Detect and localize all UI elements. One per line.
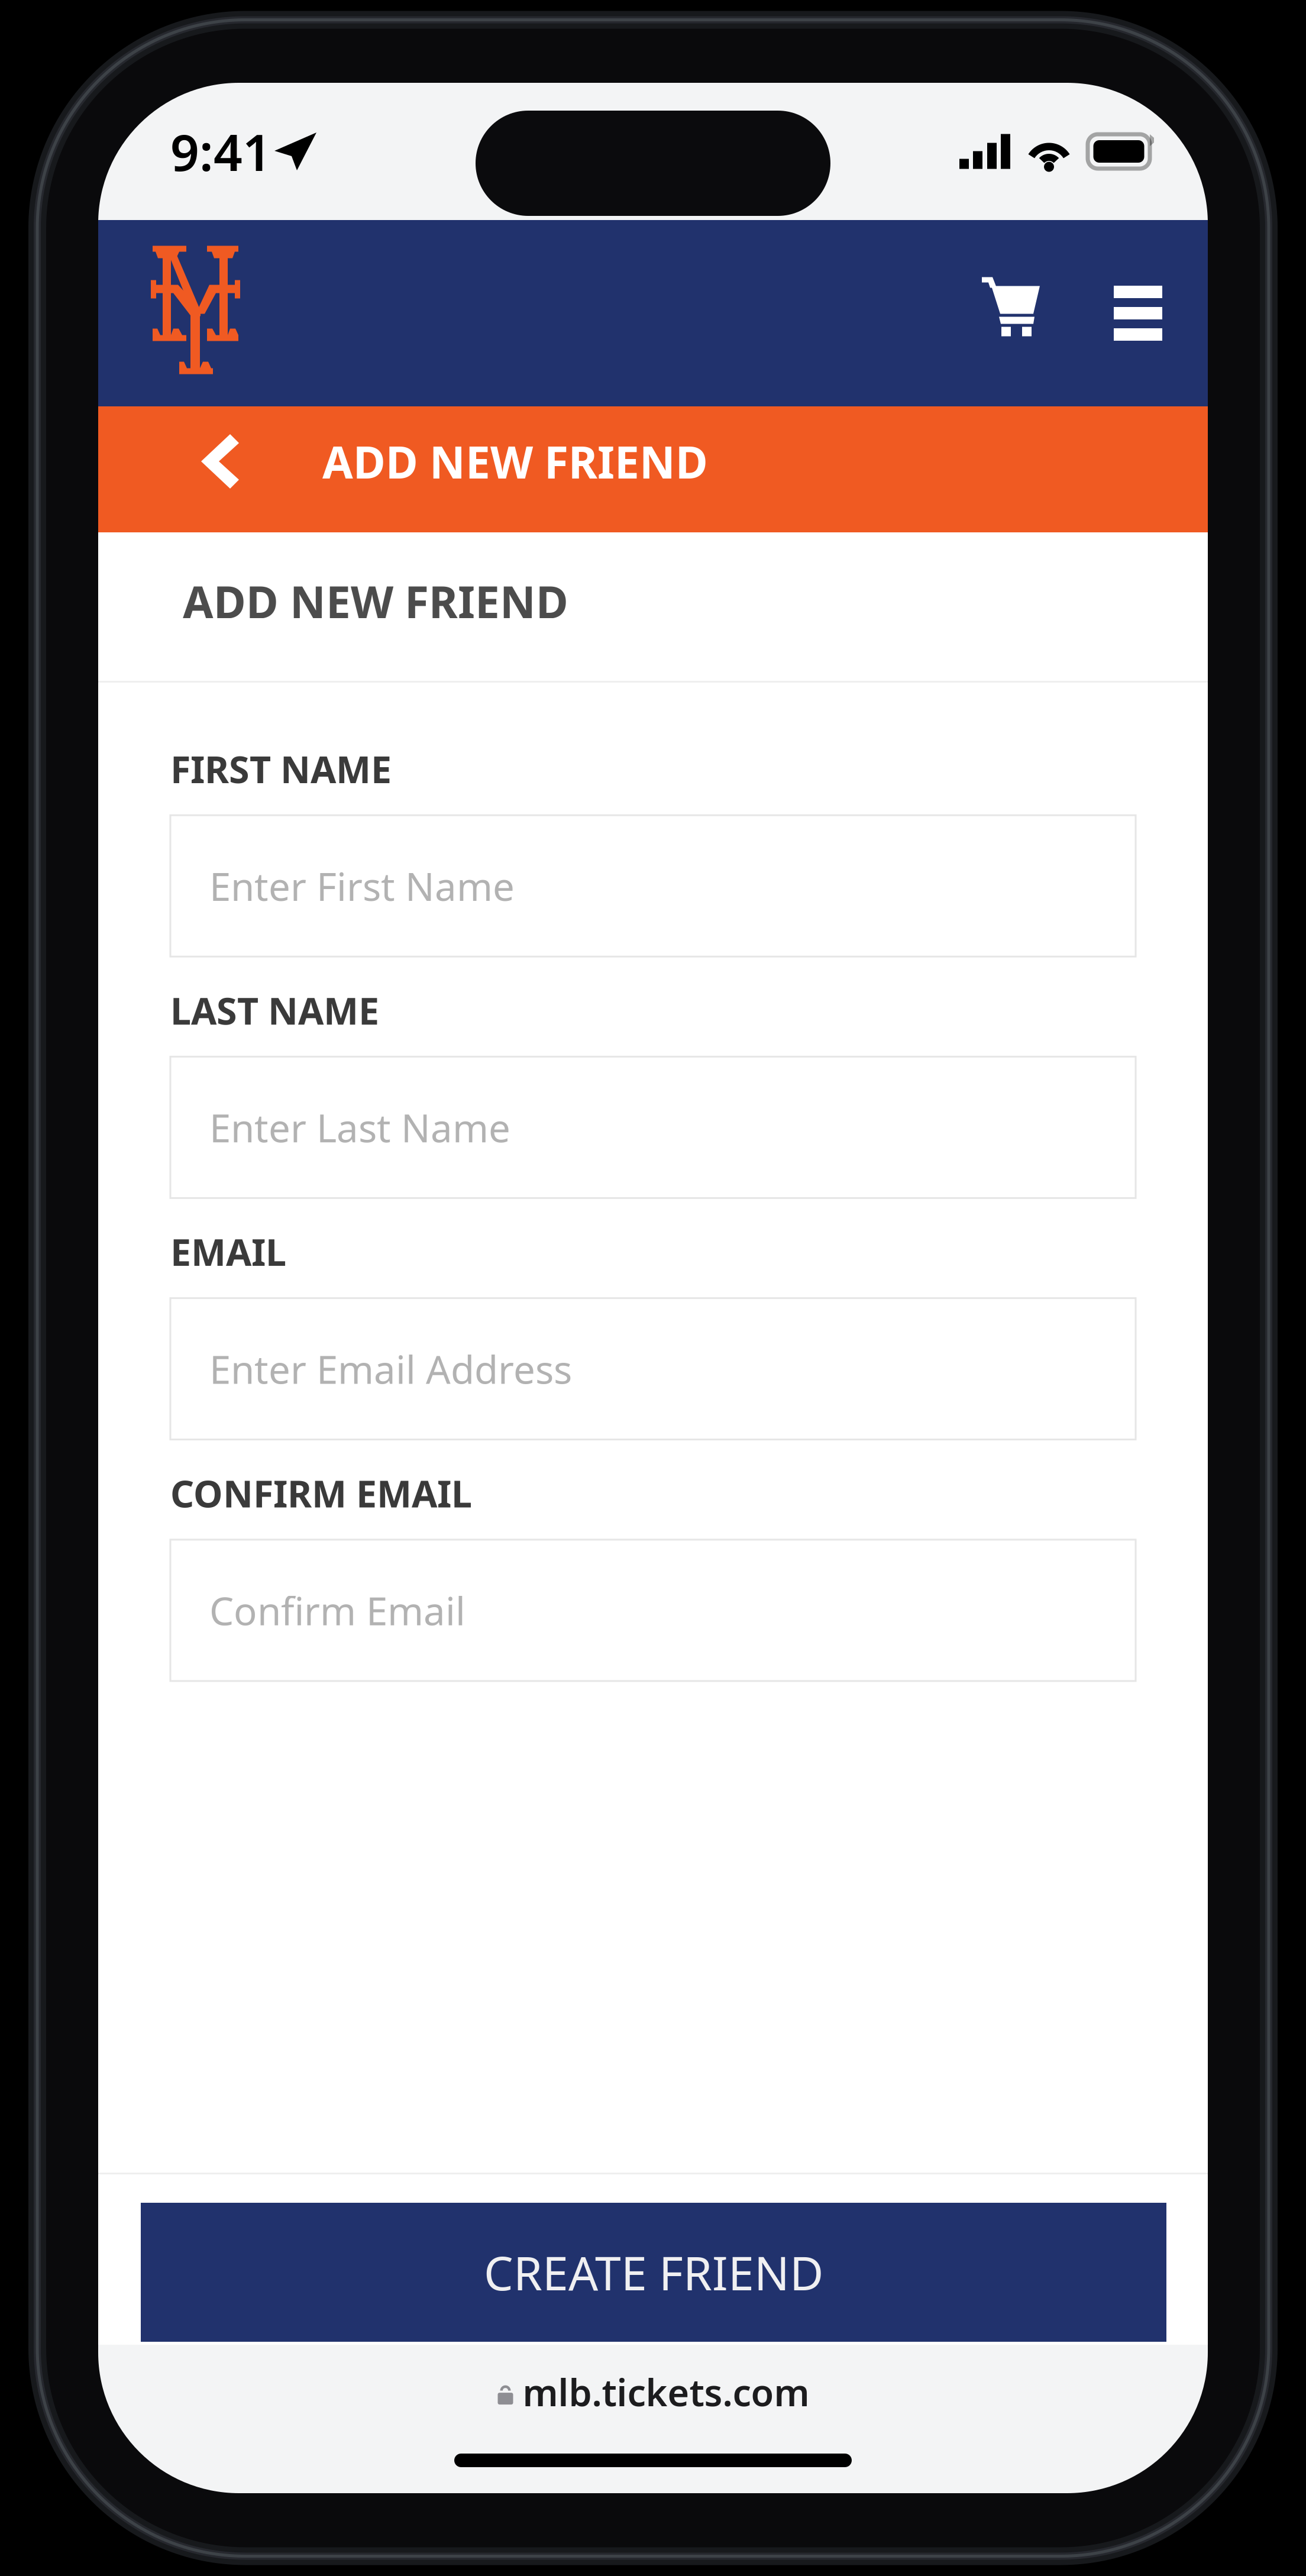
button[interactable]: Back <box>201 398 239 524</box>
staticText: CREATE FRIEND <box>484 2241 823 2303</box>
staticText: Confirm Email <box>209 1585 465 1636</box>
staticText: EMAIL <box>170 1227 286 1276</box>
button[interactable]: Cart <box>982 220 1040 406</box>
staticText: LAST NAME <box>170 986 379 1035</box>
staticText: FIRST NAME <box>170 744 392 793</box>
button[interactable]: New York Mets home <box>98 220 264 406</box>
staticText: ADD NEW FRIEND <box>183 572 568 631</box>
button[interactable]: Menu <box>1114 220 1162 406</box>
button[interactable]: CREATE FRIEND <box>98 2174 1208 2345</box>
staticText: CONFIRM EMAIL <box>170 1469 472 1518</box>
staticText: mlb.tickets.com <box>523 2367 809 2416</box>
staticText: Enter First Name <box>209 860 515 912</box>
staticText: Enter Last Name <box>209 1102 510 1153</box>
staticText: Enter Email Address <box>209 1343 572 1395</box>
staticText: ADD NEW FRIEND <box>322 432 708 491</box>
staticText: 9:41 <box>170 118 271 185</box>
